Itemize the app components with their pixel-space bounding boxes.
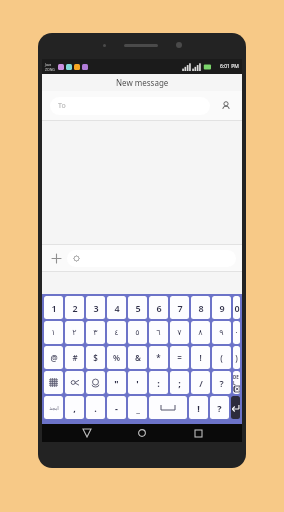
button[interactable]: ٨: [191, 321, 210, 344]
staticText: ٥: [135, 328, 140, 337]
button[interactable]: DEL: [233, 371, 240, 394]
button[interactable]: ٣: [86, 321, 105, 344]
staticText: 6: [156, 302, 162, 314]
staticText: ZONG: [45, 67, 55, 72]
staticText: 5: [135, 302, 141, 314]
button[interactable]: 2: [65, 296, 84, 319]
staticText: $: [93, 352, 98, 363]
button[interactable]: ': [128, 371, 147, 394]
button[interactable]: ٢: [65, 321, 84, 344]
staticText: .: [94, 402, 97, 414]
button[interactable]: /: [191, 371, 210, 394]
button[interactable]: [65, 371, 84, 394]
button[interactable]: @: [44, 346, 63, 369]
staticText: ٠: [234, 328, 239, 337]
button[interactable]: .: [86, 396, 105, 419]
button[interactable]: =: [170, 346, 189, 369]
button[interactable]: ٦: [149, 321, 168, 344]
button[interactable]: Add contact: [218, 98, 234, 114]
button[interactable]: Recents: [187, 424, 209, 442]
staticText: ): [235, 352, 238, 363]
staticText: 9: [219, 302, 225, 314]
button[interactable]: _: [128, 396, 147, 419]
button[interactable]: (: [212, 346, 231, 369]
button[interactable]: 9: [212, 296, 231, 319]
button[interactable]: !: [189, 396, 208, 419]
button[interactable]: 3: [86, 296, 105, 319]
button[interactable]: ٠: [233, 321, 240, 344]
button[interactable]: $: [86, 346, 105, 369]
button[interactable]: To: [50, 97, 210, 115]
button[interactable]: [86, 371, 105, 394]
staticText: -: [115, 402, 118, 414]
button[interactable]: Back: [76, 424, 98, 442]
button[interactable]: 4: [107, 296, 126, 319]
staticText: ٤: [114, 328, 119, 337]
button[interactable]: ٧: [170, 321, 189, 344]
staticText: To: [58, 101, 66, 111]
button[interactable]: ,: [65, 396, 84, 419]
staticText: =: [177, 352, 182, 363]
button[interactable]: ?: [210, 396, 229, 419]
staticText: Jazz: [45, 62, 52, 67]
staticText: 0: [234, 302, 240, 314]
button[interactable]: %: [107, 346, 126, 369]
button[interactable]: ١: [44, 321, 63, 344]
staticText: ": [114, 377, 119, 389]
button[interactable]: [67, 250, 236, 267]
button[interactable]: ٩: [212, 321, 231, 344]
staticText: _: [136, 402, 140, 414]
staticText: ٩: [219, 328, 224, 337]
staticText: /: [199, 377, 203, 389]
button[interactable]: ;: [170, 371, 189, 394]
staticText: New message: [116, 77, 169, 88]
button[interactable]: &: [128, 346, 147, 369]
button[interactable]: ٤: [107, 321, 126, 344]
staticText: DEL: [233, 374, 240, 386]
staticText: 1: [51, 302, 57, 314]
button[interactable]: [149, 396, 187, 419]
button[interactable]: 6: [149, 296, 168, 319]
button[interactable]: [44, 371, 63, 394]
button[interactable]: #: [65, 346, 84, 369]
staticText: %: [113, 352, 120, 363]
button[interactable]: !: [191, 346, 210, 369]
button[interactable]: Home: [131, 424, 153, 442]
staticText: 7: [177, 302, 183, 314]
button[interactable]: ": [107, 371, 126, 394]
staticText: #: [72, 352, 78, 363]
staticText: ,: [73, 402, 76, 414]
button[interactable]: 7: [170, 296, 189, 319]
button[interactable]: 0: [233, 296, 240, 319]
staticText: ?: [219, 377, 224, 389]
button[interactable]: 5: [128, 296, 147, 319]
button[interactable]: ?: [212, 371, 231, 394]
button[interactable]: 1: [44, 296, 63, 319]
staticText: 3: [93, 302, 99, 314]
staticText: ': [136, 377, 139, 389]
button[interactable]: ابجد: [44, 396, 63, 419]
staticText: 4: [114, 302, 120, 314]
staticText: ?: [217, 402, 222, 414]
staticText: ٦: [156, 328, 161, 337]
staticText: ;: [178, 377, 181, 389]
staticText: *: [156, 352, 161, 363]
staticText: (: [220, 352, 223, 363]
button[interactable]: :: [149, 371, 168, 394]
staticText: @: [50, 352, 58, 363]
button[interactable]: Attach: [48, 250, 64, 266]
staticText: ٨: [198, 328, 203, 337]
button[interactable]: 8: [191, 296, 210, 319]
staticText: !: [197, 402, 200, 414]
staticText: :: [157, 377, 160, 389]
button[interactable]: *: [149, 346, 168, 369]
staticText: ٣: [93, 328, 98, 337]
staticText: ابجد: [49, 405, 59, 411]
staticText: ٧: [177, 328, 182, 337]
staticText: !: [199, 352, 202, 363]
button[interactable]: [231, 396, 240, 419]
button[interactable]: ): [233, 346, 240, 369]
button[interactable]: -: [107, 396, 126, 419]
staticText: ٢: [72, 328, 77, 337]
button[interactable]: ٥: [128, 321, 147, 344]
